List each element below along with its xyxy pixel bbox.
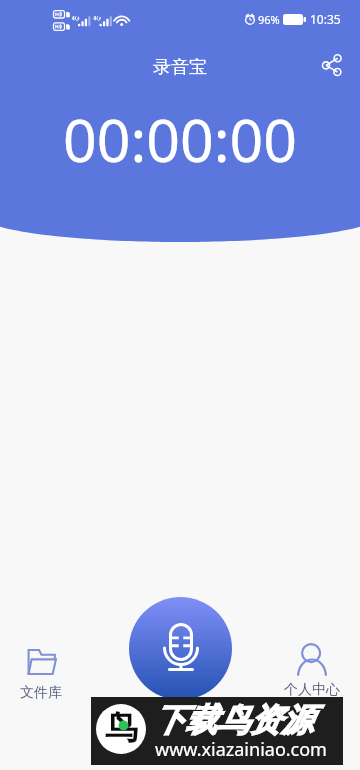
staticText: 录音宝 <box>153 56 207 79</box>
staticText: 个人中心 <box>284 681 340 699</box>
staticText: 文件库 <box>20 684 62 702</box>
staticText: 下载鸟资源 <box>153 700 313 740</box>
staticText: www.xiazainiao.com <box>155 737 327 762</box>
staticText: 96% <box>258 12 280 27</box>
button[interactable]: Share <box>315 50 349 84</box>
button[interactable]: 个人中心 <box>276 643 348 699</box>
staticText: 00:00:00 <box>0 99 360 179</box>
button[interactable]: Record <box>129 597 232 700</box>
button[interactable]: 文件库 <box>10 649 72 702</box>
staticText: 10:35 <box>310 11 341 27</box>
staticText: 鸟 <box>105 707 138 749</box>
